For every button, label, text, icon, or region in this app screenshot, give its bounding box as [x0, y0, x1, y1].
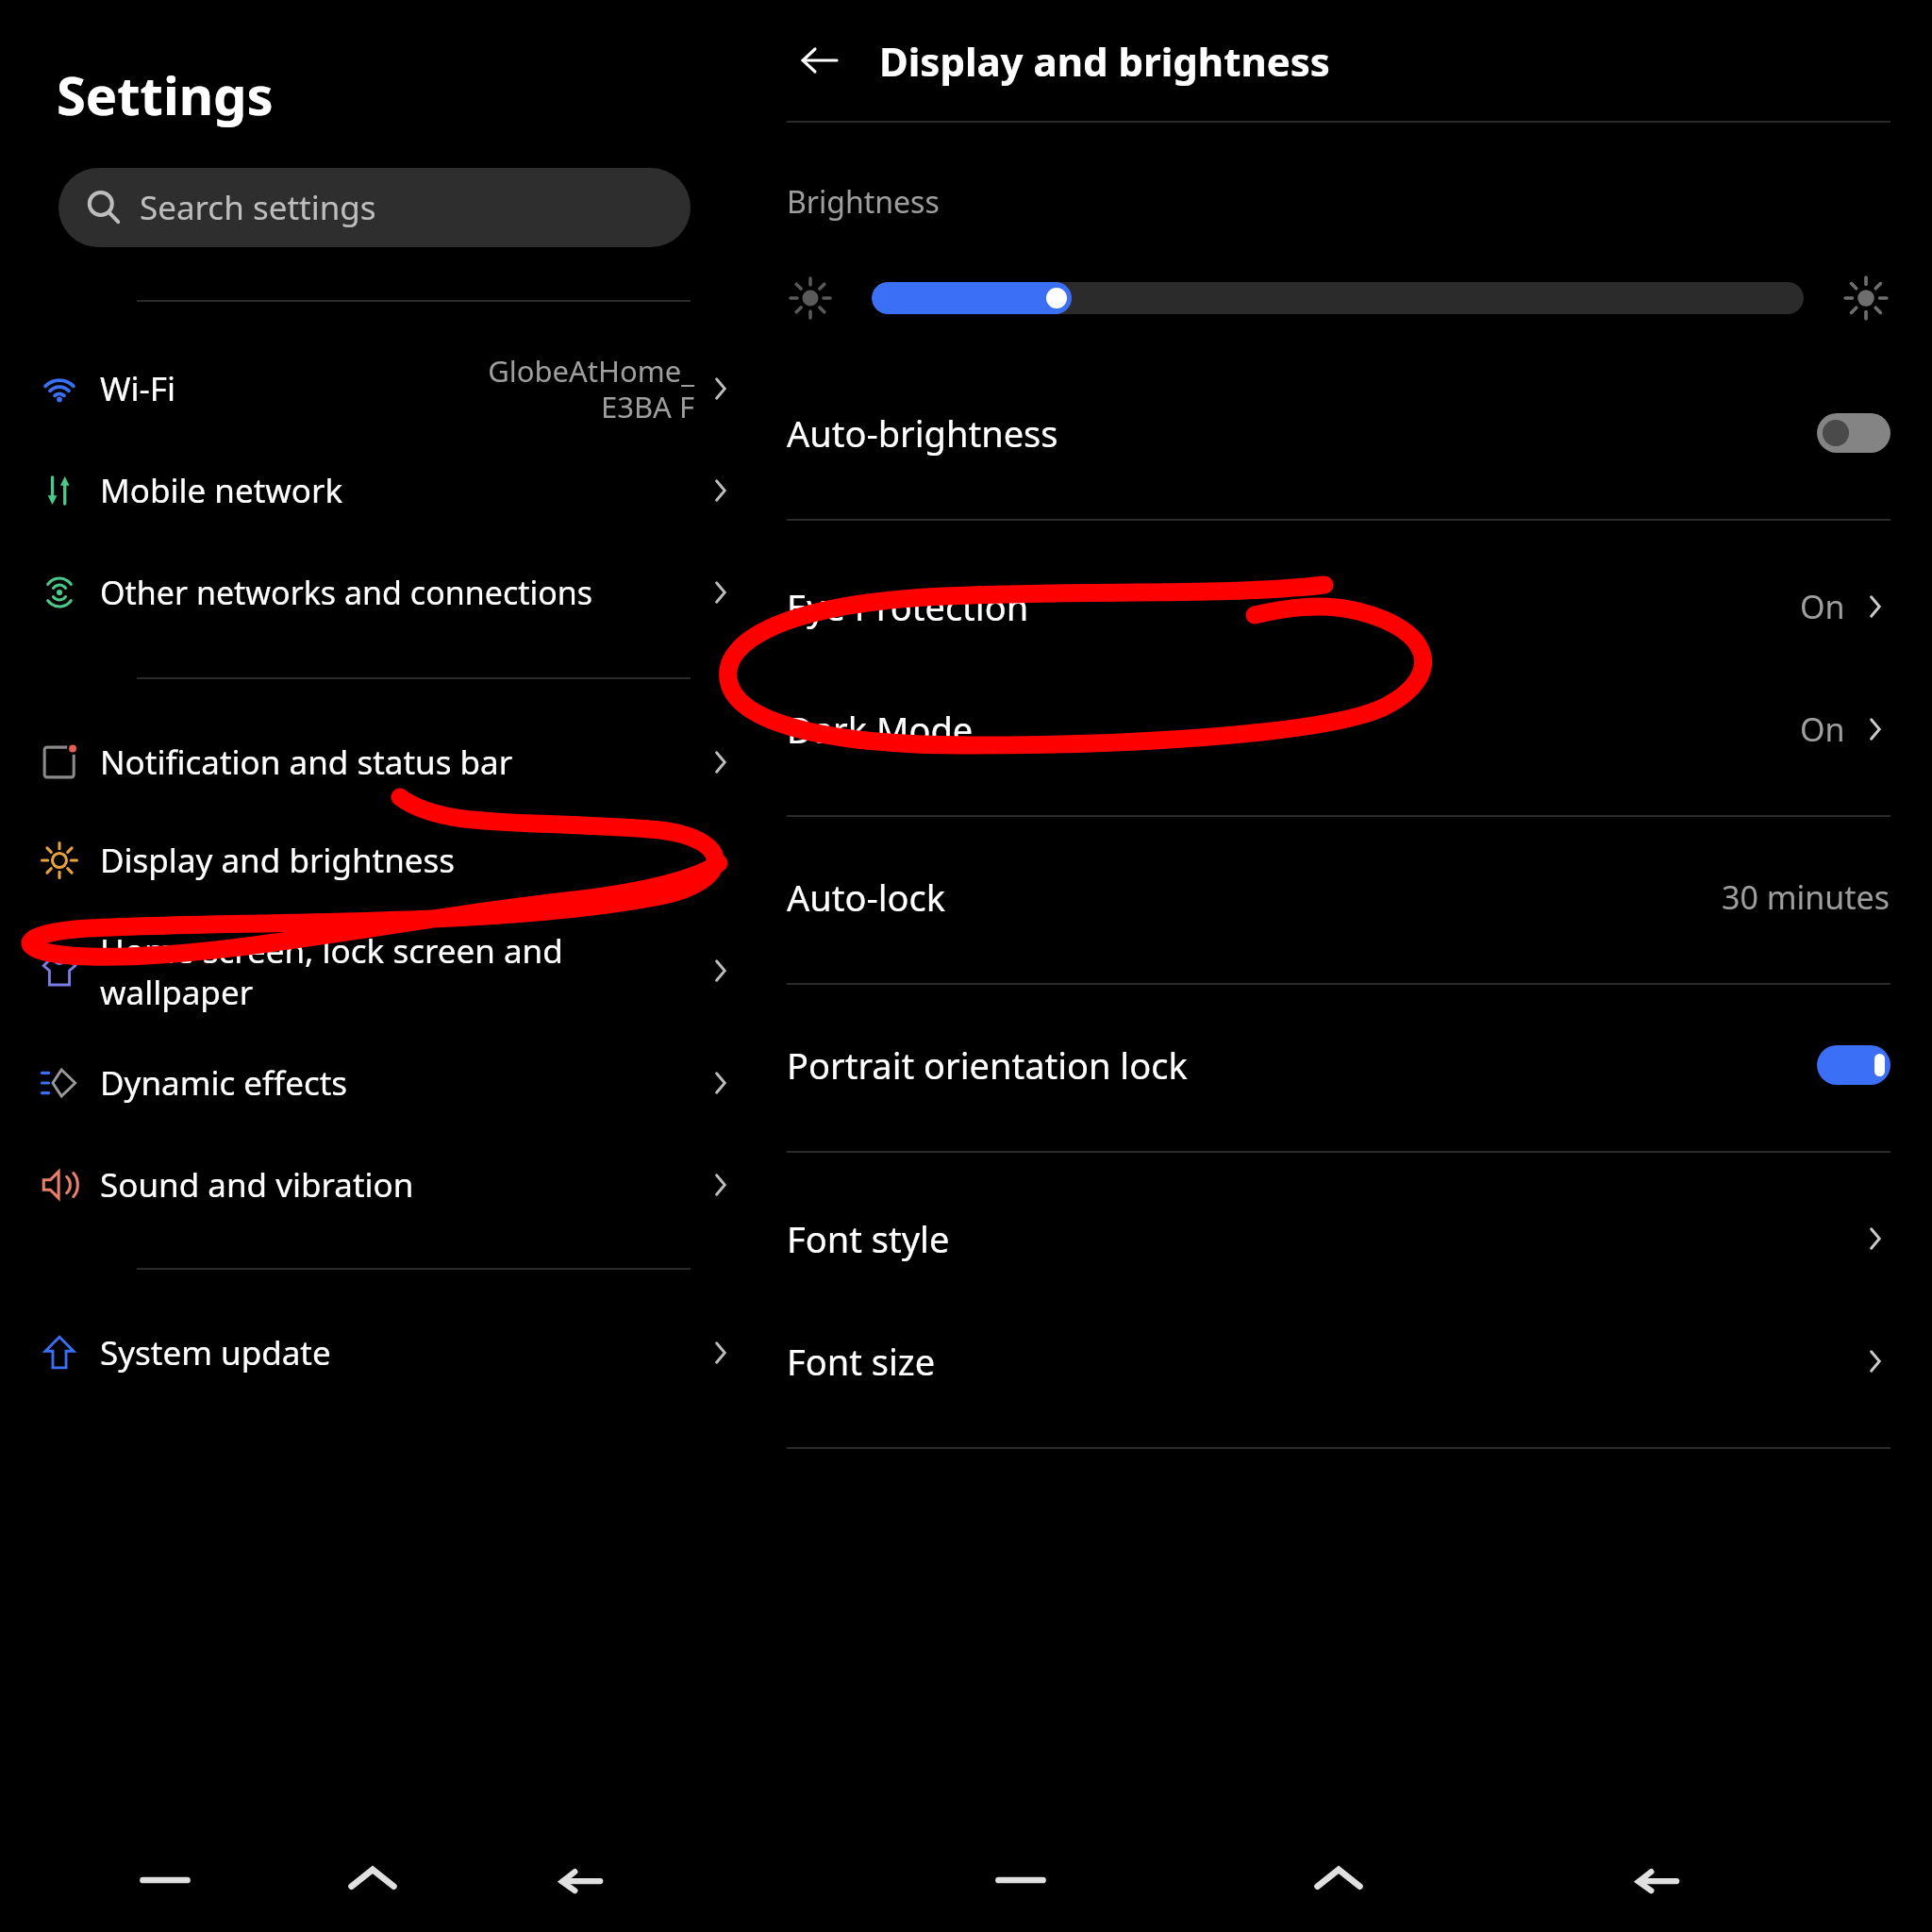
button[interactable]: Home [330, 1838, 415, 1923]
button[interactable]: Font style [745, 1177, 1932, 1300]
button[interactable]: Toggle on [1817, 1045, 1890, 1085]
staticText: Display and brightness [100, 838, 692, 883]
staticText: System update [100, 1330, 692, 1375]
staticText: Other networks and connections [100, 571, 692, 614]
staticText: Eye Protection [787, 582, 1800, 631]
button[interactable]: Portrait orientation lock [745, 1004, 1932, 1126]
staticText: Sound and vibration [100, 1162, 692, 1207]
staticText: GlobeAtHome_E3BA F [477, 351, 694, 426]
staticText: 30 minutes [1722, 875, 1890, 919]
staticText: Font size [787, 1337, 1858, 1386]
button[interactable]: Wi-Fi [0, 338, 745, 440]
button[interactable] [872, 282, 1804, 314]
staticText: Dynamic effects [100, 1060, 692, 1106]
staticText: Home screen, lock screen and wallpaper [100, 928, 692, 1014]
staticText: Wi-Fi [100, 366, 466, 411]
staticText: Portrait orientation lock [787, 1041, 1817, 1090]
staticText: Notification and status bar [100, 740, 692, 785]
button[interactable]: Auto-brightness [745, 372, 1932, 494]
button[interactable]: Auto-lock [745, 836, 1932, 958]
staticText: On [1800, 585, 1845, 628]
button[interactable]: Dark Mode [745, 668, 1932, 791]
button[interactable]: Home [1296, 1838, 1381, 1923]
button[interactable]: Eye Protection [745, 545, 1932, 668]
button[interactable]: Back [538, 1838, 623, 1923]
button[interactable]: Sound and vibration [0, 1134, 745, 1236]
staticText: Font style [787, 1214, 1858, 1263]
button[interactable]: Back [787, 27, 853, 93]
button[interactable]: System update [0, 1302, 745, 1404]
staticText: Settings [57, 58, 274, 130]
staticText: Brightness [787, 181, 940, 223]
staticText: Display and brightness [879, 34, 1330, 88]
staticText: Dark Mode [787, 705, 1800, 754]
button[interactable]: Back [1614, 1838, 1699, 1923]
button[interactable]: Recents [978, 1838, 1063, 1923]
button[interactable]: Recents [123, 1838, 208, 1923]
button[interactable]: Display and brightness [0, 811, 745, 909]
button[interactable]: Mobile network [0, 440, 745, 541]
staticText: Auto-brightness [787, 408, 1817, 458]
button[interactable]: Home screen, lock screen and wallpaper [0, 909, 745, 1032]
staticText: Auto-lock [787, 873, 1722, 922]
staticText: Search settings [140, 185, 376, 230]
button[interactable]: Other networks and connections [0, 541, 745, 643]
button[interactable]: Font size [745, 1300, 1932, 1423]
staticText: On [1800, 708, 1845, 751]
staticText: Mobile network [100, 468, 692, 513]
button[interactable]: Notification and status bar [0, 713, 745, 811]
button[interactable]: Dynamic effects [0, 1032, 745, 1134]
button[interactable]: Toggle off [1817, 413, 1890, 453]
button[interactable]: Search settings [58, 168, 691, 247]
